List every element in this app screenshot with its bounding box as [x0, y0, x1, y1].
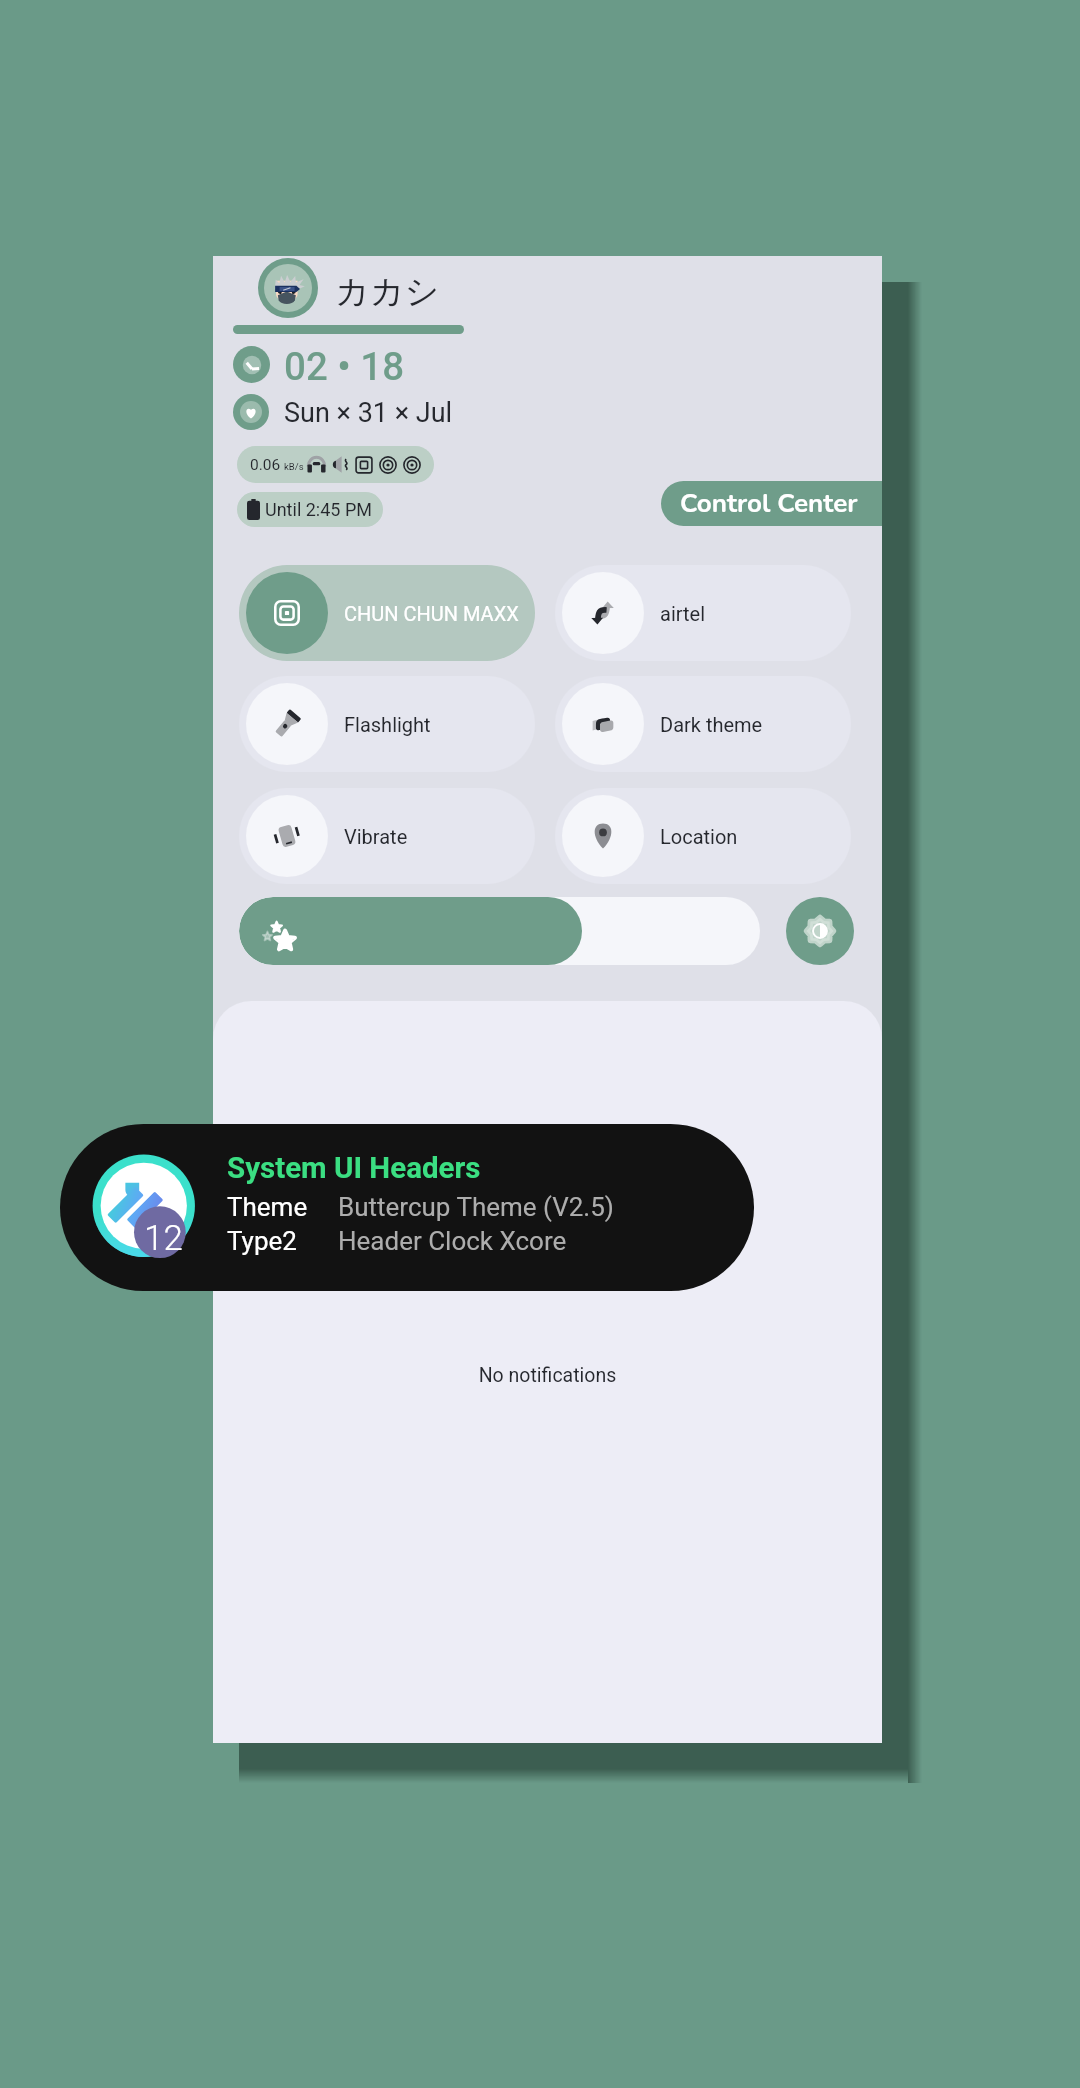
- staticText: Type2: [227, 1226, 338, 1256]
- staticText: Buttercup Theme (V2.5): [338, 1192, 614, 1222]
- button[interactable]: Vibrate: [239, 788, 535, 884]
- staticText: Vibrate: [344, 825, 408, 848]
- staticText: Sun × 31 × Jul: [284, 397, 453, 429]
- staticText: 02 • 18: [284, 344, 405, 389]
- button[interactable]: Auto brightness: [786, 897, 854, 965]
- button[interactable]: airtel: [555, 565, 851, 661]
- staticText: Location: [660, 825, 738, 848]
- button[interactable]: Brightness: [239, 897, 760, 965]
- staticText: Theme: [227, 1192, 338, 1222]
- staticText: 0.06: [250, 456, 281, 474]
- staticText: Until 2:45 PM: [265, 499, 372, 520]
- button[interactable]: Flashlight: [239, 676, 535, 772]
- button[interactable]: CHUN CHUN MAXX: [239, 565, 535, 661]
- staticText: System UI Headers: [227, 1151, 481, 1186]
- button[interactable]: Location: [555, 788, 851, 884]
- staticText: No notifications: [213, 1364, 882, 1387]
- staticText: airtel: [660, 602, 706, 625]
- staticText: CHUN CHUN MAXX: [344, 602, 519, 625]
- staticText: kB/s: [284, 461, 304, 472]
- button[interactable]: Profile: [258, 258, 318, 318]
- staticText: Control Center: [680, 486, 858, 521]
- staticText: Flashlight: [344, 713, 431, 736]
- staticText: カカシ: [335, 270, 440, 313]
- staticText: Header Clock Xcore: [338, 1226, 567, 1256]
- button[interactable]: Dark theme: [555, 676, 851, 772]
- button[interactable]: Control Center: [661, 481, 882, 526]
- button[interactable]: 12: [60, 1124, 754, 1291]
- staticText: 12: [144, 1218, 183, 1259]
- staticText: Dark theme: [660, 713, 763, 736]
